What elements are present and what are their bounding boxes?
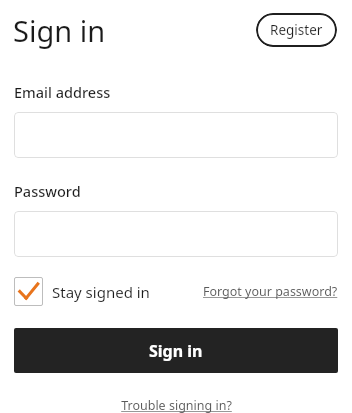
staticText: Forgot your password?	[203, 283, 338, 300]
button[interactable]	[14, 211, 338, 257]
button[interactable]: Stay signed in checkbox	[14, 277, 150, 306]
button[interactable]: Register	[256, 13, 337, 47]
staticText: Password	[14, 181, 81, 201]
staticText: Register	[270, 21, 323, 39]
staticText: Sign in	[13, 11, 106, 50]
button[interactable]: Sign in	[14, 328, 338, 373]
button[interactable]: Trouble signing in?	[121, 397, 232, 413]
staticText: Email address	[14, 82, 111, 102]
button[interactable]: Forgot your password?	[203, 283, 338, 300]
staticText: Stay signed in	[52, 282, 150, 302]
button[interactable]	[14, 112, 338, 158]
staticText: Trouble signing in?	[121, 397, 232, 413]
staticText: Sign in	[149, 340, 203, 362]
other: Stay signed in checkbox	[14, 277, 43, 306]
